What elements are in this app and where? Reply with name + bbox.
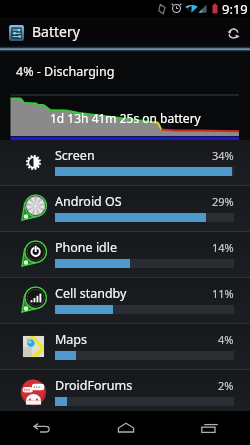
staticText: 9:19: [222, 0, 248, 17]
button[interactable]: Android OS: [0, 186, 250, 232]
button[interactable]: Refresh: [216, 17, 250, 49]
staticText: Android OS: [55, 193, 122, 210]
button[interactable]: Home: [84, 411, 167, 445]
button[interactable]: Phone idle: [0, 232, 250, 278]
staticText: 11%: [212, 286, 234, 301]
staticText: 2%: [218, 378, 234, 393]
button[interactable]: DroidForums: [0, 370, 250, 416]
staticText: Maps: [55, 331, 88, 348]
staticText: 1d 13h 41m 25s on battery: [50, 110, 201, 126]
staticText: Cell standby: [55, 285, 127, 302]
staticText: 34%: [212, 148, 234, 163]
staticText: 4%: [218, 332, 234, 347]
button[interactable]: Cell standby: [0, 278, 250, 324]
staticText: 4% - Discharging: [16, 63, 115, 80]
staticText: 14%: [212, 240, 234, 255]
button[interactable]: Recent apps: [167, 411, 250, 445]
staticText: Battery: [32, 22, 80, 41]
button[interactable]: Maps: [0, 324, 250, 370]
staticText: Screen: [55, 147, 95, 164]
staticText: 29%: [212, 194, 234, 209]
staticText: Phone idle: [55, 239, 118, 256]
button[interactable]: Back: [0, 411, 84, 445]
button[interactable]: Screen: [0, 140, 250, 186]
staticText: DroidForums: [55, 377, 133, 394]
